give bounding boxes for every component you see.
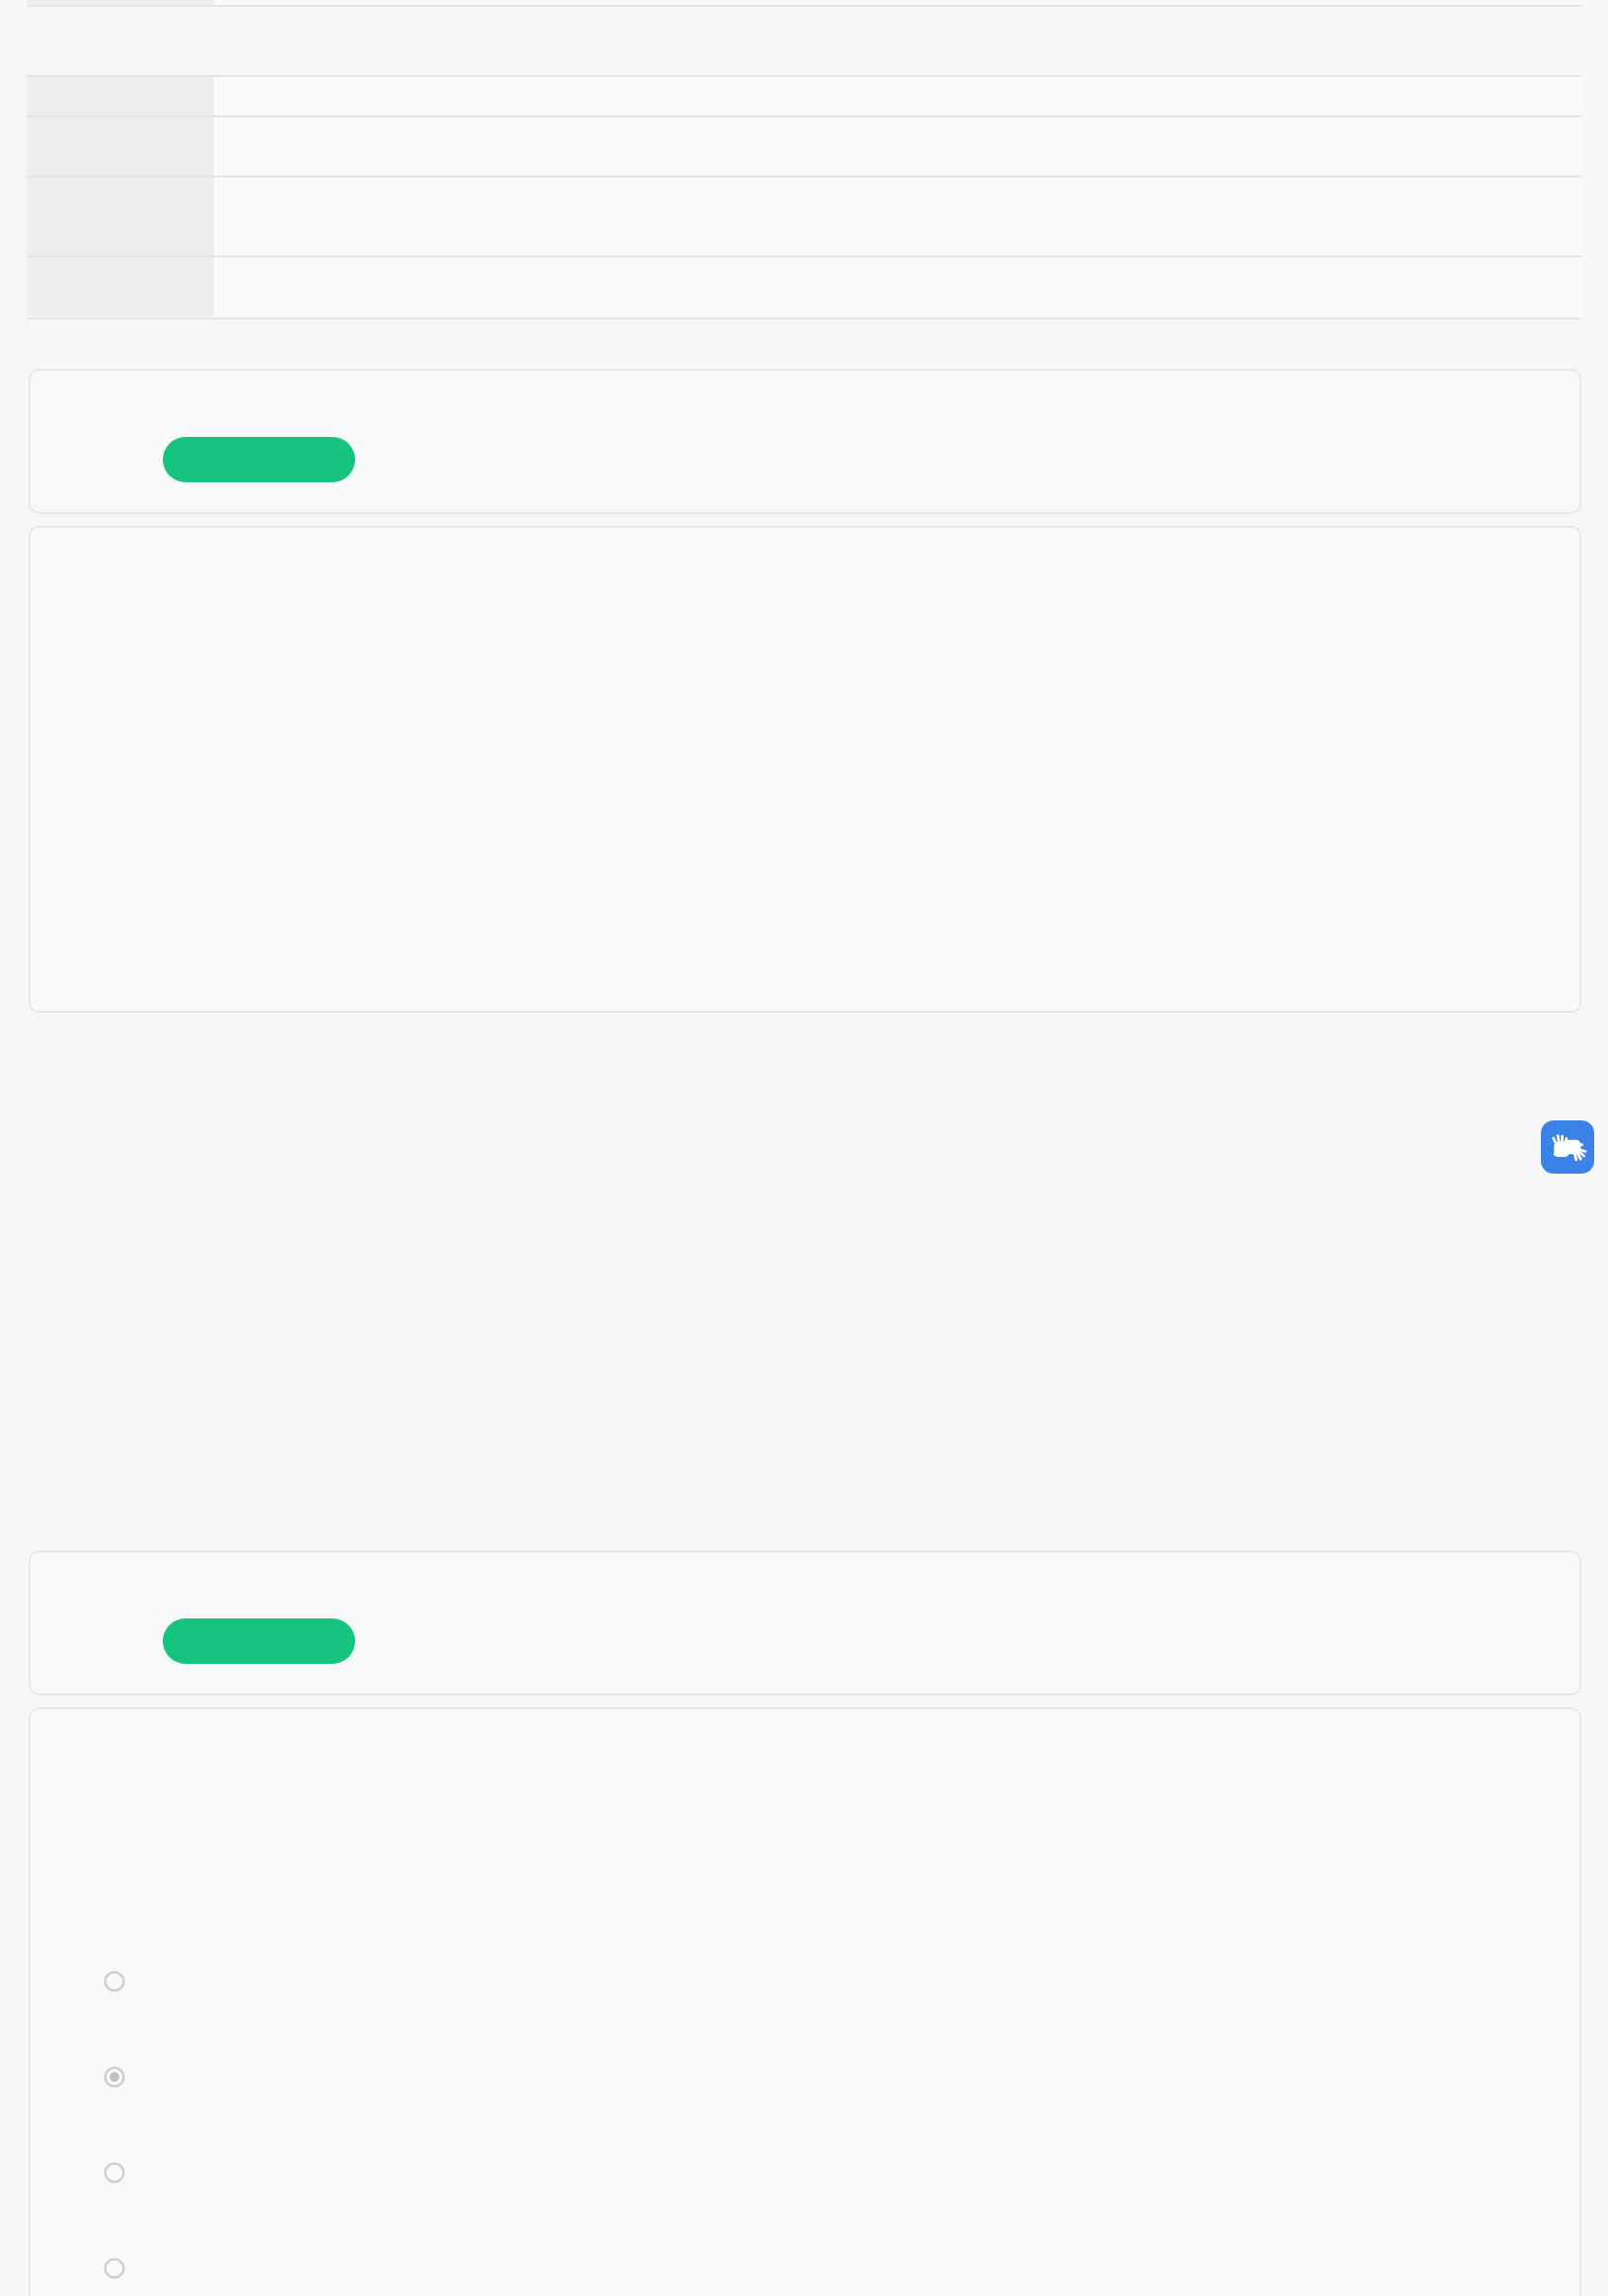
button[interactable]: Submit [163, 437, 355, 482]
button[interactable]: Submit [163, 1618, 355, 1664]
button[interactable]: Sign language accessibility [1541, 1120, 1594, 1174]
